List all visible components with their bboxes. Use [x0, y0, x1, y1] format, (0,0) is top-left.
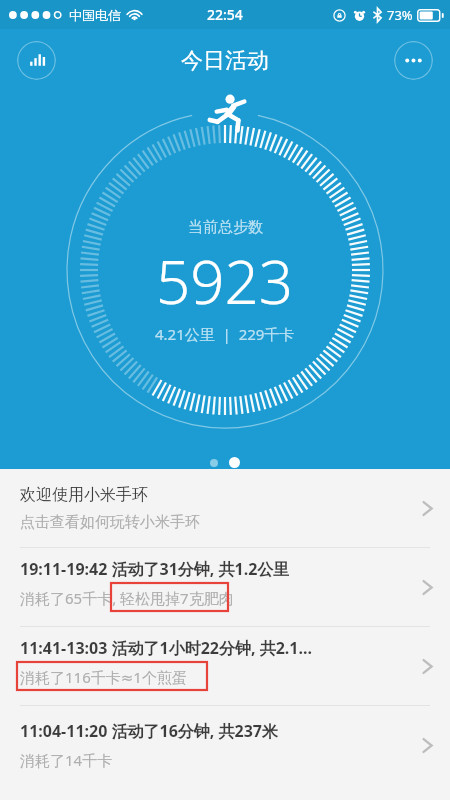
staticText: 5923 — [156, 240, 294, 322]
button[interactable]: 11:04-11:20 活动了16分钟, 共237米 — [0, 706, 450, 784]
staticText: 当前总步数 — [188, 218, 263, 237]
staticText: 73% — [387, 6, 413, 24]
button[interactable]: 欢迎使用小米手环 — [0, 469, 450, 548]
staticText: 4.21公里 | 229千卡 — [155, 324, 295, 344]
staticText: 消耗了14千卡 — [20, 750, 113, 770]
staticText: 消耗了65千卡, 轻松甩掉7克肥肉 — [20, 588, 234, 608]
staticText: 点击查看如何玩转小米手环 — [20, 513, 200, 532]
staticText: 今日活动 — [181, 47, 269, 75]
button[interactable]: 11:41-13:03 活动了1小时22分钟, 共2.1... — [0, 627, 450, 706]
staticText: 欢迎使用小米手环 — [20, 485, 148, 505]
staticText: 消耗了116千卡≈1个煎蛋 — [20, 667, 187, 687]
button[interactable]: 活动统计 — [17, 41, 56, 80]
button[interactable]: 19:11-19:42 活动了31分钟, 共1.2公里 — [0, 548, 450, 627]
staticText: 中国电信 — [69, 7, 121, 23]
staticText: 11:04-11:20 活动了16分钟, 共237米 — [20, 720, 278, 742]
staticText: 19:11-19:42 活动了31分钟, 共1.2公里 — [20, 558, 290, 580]
button[interactable]: 更多选项 — [394, 41, 433, 80]
staticText: 22:54 — [207, 5, 243, 24]
staticText: 11:41-13:03 活动了1小时22分钟, 共2.1... — [20, 637, 312, 659]
